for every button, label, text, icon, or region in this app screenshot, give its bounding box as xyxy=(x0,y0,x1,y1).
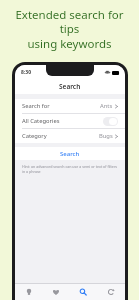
button[interactable]: Refresh xyxy=(97,284,125,300)
staticText: Ants xyxy=(100,102,113,110)
staticText: Bugs xyxy=(99,132,113,140)
button[interactable]: All Categories xyxy=(15,114,125,128)
staticText: Search xyxy=(59,82,81,91)
staticText: using keywords xyxy=(27,36,112,52)
button[interactable]: Search xyxy=(69,284,97,300)
staticText: Category xyxy=(22,132,47,140)
staticText: Extended search for tips xyxy=(6,7,133,36)
button[interactable]: All Categories toggle xyxy=(103,117,118,126)
button[interactable]: Tips xyxy=(15,284,42,300)
button[interactable]: Search xyxy=(15,147,125,160)
button[interactable]: Category xyxy=(15,129,125,143)
staticText: 8:30 xyxy=(21,69,31,76)
staticText: Search xyxy=(60,150,80,158)
button[interactable]: Favorites xyxy=(42,284,69,300)
staticText: All Categories xyxy=(22,117,60,125)
staticText: Hint: an advanced search can use a semi … xyxy=(22,164,118,174)
button[interactable]: Search for xyxy=(15,99,125,113)
staticText: Search for xyxy=(22,102,50,110)
